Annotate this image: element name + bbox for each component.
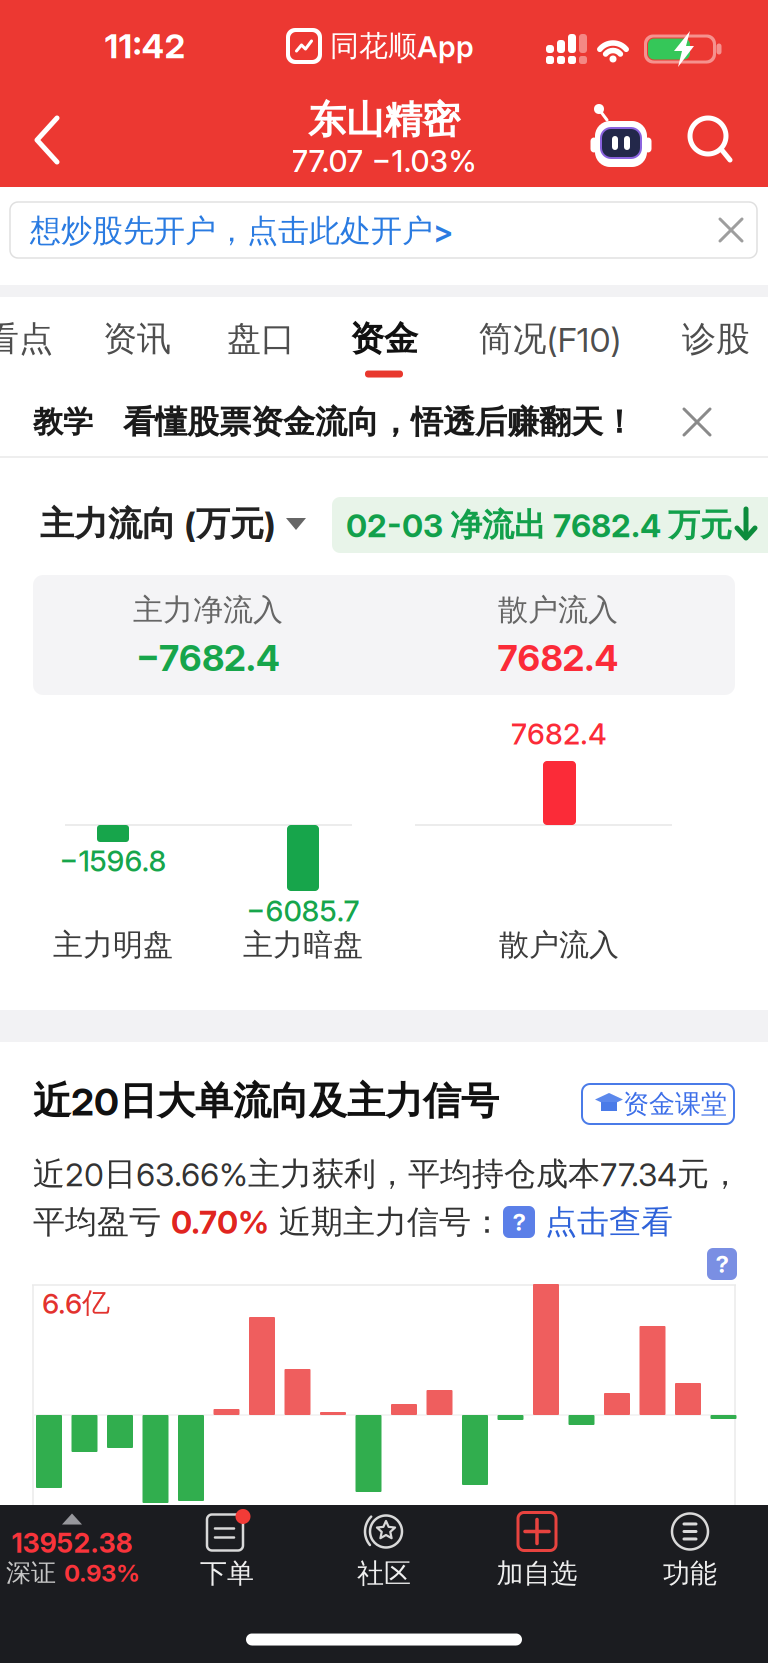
- staticText: −6085.7: [246, 893, 359, 929]
- staticText: 盘口: [227, 318, 295, 360]
- button[interactable]: 主力流向 (万元): [40, 503, 306, 545]
- button[interactable]: 社区: [357, 1511, 411, 1590]
- button[interactable]: Help: [503, 1206, 535, 1238]
- staticText: 看点: [0, 318, 53, 360]
- staticText: 近期主力信号：: [269, 1202, 503, 1242]
- staticText: 看懂股票资金流向，悟透后赚翻天！: [123, 402, 635, 442]
- staticText: 东山精密: [308, 96, 460, 144]
- staticText: 想炒股先开户，点击此处开户>: [30, 211, 453, 251]
- staticText: 02-03 净流出 7682.4 万元: [346, 505, 732, 545]
- staticText: 深证: [6, 1557, 56, 1589]
- button[interactable]: Back: [34, 116, 62, 164]
- button[interactable]: 下单: [200, 1511, 254, 1590]
- button[interactable]: 看点: [0, 318, 53, 360]
- staticText: 7682.4: [497, 636, 618, 680]
- staticText: 散户流入: [499, 926, 619, 964]
- staticText: 散户流入: [498, 591, 618, 629]
- button[interactable]: 资金课堂: [582, 1084, 734, 1124]
- button[interactable]: AI assistant: [589, 98, 653, 170]
- button[interactable]: 13952.38: [0, 0, 768, 1663]
- button[interactable]: Chart help: [707, 1248, 737, 1280]
- staticText: 教学: [33, 403, 93, 441]
- staticText: 加自选: [496, 1556, 577, 1590]
- staticText: 主力流向 (万元): [40, 503, 276, 545]
- button[interactable]: 诊股: [682, 318, 750, 360]
- button[interactable]: 加自选: [496, 1511, 577, 1590]
- button[interactable]: 盘口: [227, 318, 295, 360]
- staticText: ?: [715, 1249, 728, 1278]
- button[interactable]: 点击查看: [535, 1202, 673, 1242]
- staticText: −1596.8: [59, 843, 166, 879]
- staticText: 下单: [200, 1556, 254, 1590]
- staticText: 11:42: [104, 25, 185, 66]
- staticText: ?: [512, 1207, 525, 1236]
- staticText: 0.93%: [64, 1558, 140, 1587]
- staticText: 同花顺App: [330, 28, 474, 64]
- button[interactable]: Search: [687, 115, 733, 163]
- staticText: 7682.4: [511, 716, 607, 752]
- staticText: 主力暗盘: [243, 926, 363, 964]
- staticText: 主力净流入: [133, 591, 283, 629]
- staticText: 6.6亿: [42, 1285, 110, 1321]
- staticText: 诊股: [682, 318, 750, 360]
- staticText: 近20日大单流向及主力信号: [33, 1077, 499, 1125]
- button[interactable]: 想炒股先开户，点击此处开户>: [10, 202, 757, 258]
- button[interactable]: Dismiss banner: [713, 212, 749, 248]
- staticText: 简况(F10): [478, 318, 621, 360]
- button[interactable]: 简况(F10): [478, 318, 621, 360]
- button[interactable]: 02-03 净流出 7682.4 万元: [332, 497, 768, 553]
- staticText: −7682.4: [136, 636, 280, 680]
- staticText: 平均盈亏: [33, 1202, 171, 1242]
- staticText: 77.07 −1.03%: [291, 143, 476, 179]
- button[interactable]: 资金: [350, 318, 418, 360]
- staticText: 社区: [357, 1556, 411, 1590]
- staticText: 资金课堂: [623, 1088, 727, 1120]
- staticText: 功能: [663, 1556, 717, 1590]
- staticText: 主力明盘: [53, 926, 173, 964]
- staticText: 近20日63.66%主力获利，平均持仓成本77.34元，: [33, 1154, 741, 1194]
- button[interactable]: 资讯: [103, 318, 171, 360]
- button[interactable]: 功能: [663, 1511, 717, 1590]
- staticText: 点击查看: [535, 1202, 673, 1242]
- staticText: 资金: [350, 318, 418, 360]
- staticText: 13952.38: [11, 1527, 132, 1559]
- button[interactable]: Dismiss tip: [677, 402, 717, 442]
- staticText: 资讯: [103, 318, 171, 360]
- staticText: 0.70%: [171, 1203, 269, 1241]
